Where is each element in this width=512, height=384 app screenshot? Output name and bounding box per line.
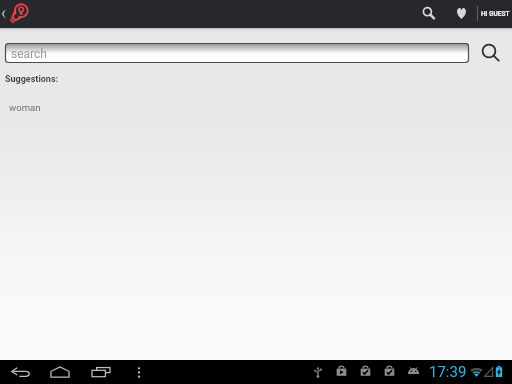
staticText: search — [11, 47, 47, 61]
staticText: woman — [9, 102, 41, 113]
button[interactable]: Menu — [127, 360, 151, 384]
staticText: 17:39 — [429, 363, 467, 381]
button[interactable]: Back — [0, 0, 10, 28]
button[interactable]: Home — [44, 360, 76, 384]
button[interactable]: Search — [417, 2, 439, 26]
button[interactable]: Search — [476, 38, 504, 66]
staticText: HI GUEST — [481, 10, 510, 18]
button[interactable]: Back — [4, 360, 36, 384]
staticText: Suggestions: — [5, 74, 59, 85]
button[interactable]: search — [5, 43, 469, 63]
button[interactable]: Recent apps — [85, 360, 117, 384]
button[interactable]: HI GUEST — [478, 0, 512, 28]
button[interactable]: Favorites — [450, 2, 473, 26]
button[interactable]: woman — [0, 99, 512, 116]
button[interactable]: App logo — [8, 0, 36, 28]
